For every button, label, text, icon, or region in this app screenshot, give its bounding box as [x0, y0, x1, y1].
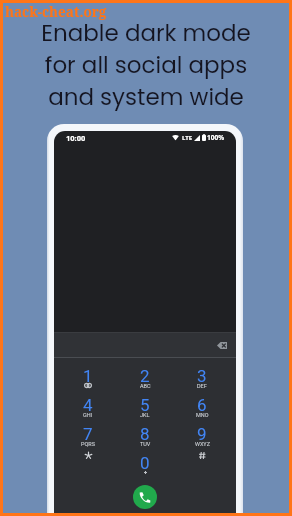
button[interactable]: Call [133, 485, 157, 509]
button[interactable]: 0 [119, 451, 171, 480]
staticText: 4 [83, 395, 93, 415]
staticText: 8 [140, 424, 150, 444]
staticText: 1 [83, 366, 93, 386]
staticText: hack-cheat.org [5, 3, 107, 21]
button[interactable]: 3 [176, 364, 228, 393]
button[interactable] [62, 451, 114, 480]
staticText: Enable dark mode for all social apps and… [3, 17, 289, 114]
staticText: PQRS [81, 441, 95, 447]
staticText: DEF [197, 383, 207, 389]
staticText: LTE [182, 134, 193, 142]
staticText: JKL [140, 412, 150, 418]
button[interactable]: 2 [119, 364, 171, 393]
staticText: 100% [207, 133, 225, 142]
button[interactable]: 6 [176, 393, 228, 422]
staticText: 0 [140, 453, 150, 473]
staticText: TUV [140, 441, 151, 447]
staticText: GHI [83, 412, 93, 418]
staticText: 10:00 [66, 133, 86, 143]
button[interactable]: 9 [176, 422, 228, 451]
staticText: ABC [140, 383, 151, 389]
staticText: 2 [140, 366, 150, 386]
staticText: MNO [196, 412, 209, 418]
staticText: 9 [197, 424, 207, 444]
button[interactable] [176, 451, 228, 480]
button[interactable]: 1 [62, 364, 114, 393]
staticText: 6 [197, 395, 207, 415]
staticText: 3 [197, 366, 207, 386]
button[interactable]: 4 [62, 393, 114, 422]
staticText: WXYZ [195, 441, 210, 447]
staticText: 7 [83, 424, 93, 444]
button[interactable]: 7 [62, 422, 114, 451]
staticText: 5 [140, 395, 150, 415]
button[interactable]: Backspace [214, 337, 230, 353]
button[interactable]: 5 [119, 393, 171, 422]
button[interactable]: 8 [119, 422, 171, 451]
